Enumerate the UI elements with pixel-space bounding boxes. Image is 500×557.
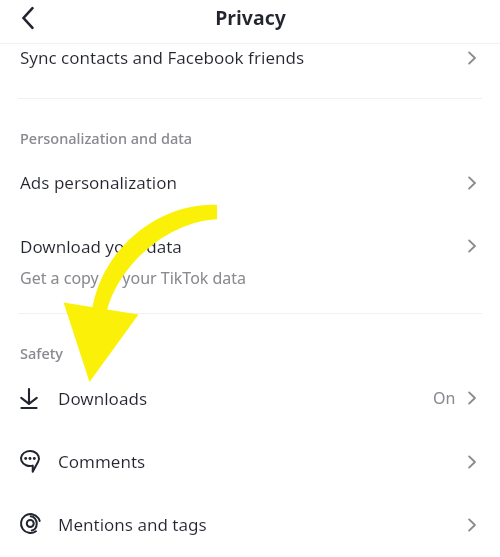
staticText: Downloads [58, 387, 433, 410]
button[interactable]: Download your data [0, 229, 500, 292]
staticText: Ads personalization [20, 171, 465, 194]
other: Mentions and tags [20, 513, 58, 536]
button[interactable]: Comments [0, 430, 500, 493]
staticText: Sync contacts and Facebook friends [20, 46, 465, 69]
staticText: Privacy [215, 4, 286, 31]
staticText: Download your data [20, 235, 182, 258]
staticText: On [433, 387, 456, 409]
button[interactable]: Downloads [0, 366, 500, 430]
other: Comments [20, 450, 58, 474]
staticText: Get a copy of your TikTok data [20, 267, 247, 289]
button[interactable]: Ads personalization [0, 164, 500, 201]
staticText: Personalization and data [20, 128, 193, 148]
button[interactable]: Back [10, 0, 46, 36]
staticText: Mentions and tags [58, 513, 465, 536]
button[interactable]: Mentions and tags [0, 493, 500, 556]
staticText: Safety [20, 343, 63, 363]
other: Downloads [20, 388, 58, 409]
staticText: Comments [58, 450, 465, 473]
button[interactable]: Sync contacts and Facebook friends [0, 44, 500, 71]
